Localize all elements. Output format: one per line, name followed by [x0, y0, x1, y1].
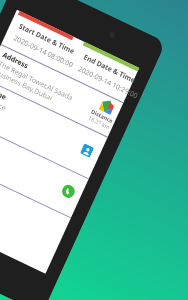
staticText: 2020-09-14 08:00:00: [12, 33, 75, 71]
button[interactable]: Start Date & Time: [6, 11, 74, 66]
staticText: 2020-09-14 10:29:00: [76, 64, 140, 101]
staticText: 18.27 km: [87, 114, 111, 130]
button[interactable]: Name: [0, 79, 107, 178]
staticText: Distance: [90, 108, 114, 124]
staticText: Address: [1, 50, 30, 71]
button[interactable]: Address: [0, 45, 123, 137]
button[interactable]: End Date & Time: [71, 42, 139, 97]
staticText: Name: [0, 85, 8, 103]
staticText: End Date & Time: [82, 52, 137, 86]
other: Open map: [99, 97, 116, 115]
other: Call: [60, 183, 77, 200]
other: Contact: [80, 143, 94, 158]
staticText: The Regal Tower,Al Saada Business Bay,Du…: [0, 59, 74, 111]
staticText: Finance: [0, 94, 8, 114]
button[interactable]: Call: [0, 121, 88, 217]
staticText: Start Date & Time: [17, 22, 76, 57]
